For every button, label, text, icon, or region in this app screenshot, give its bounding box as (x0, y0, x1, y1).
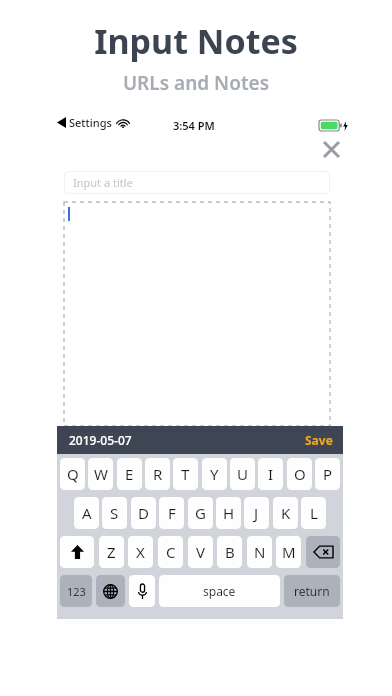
staticText: V (196, 542, 206, 562)
button[interactable]: Close (318, 136, 344, 162)
button[interactable]: K (273, 497, 298, 529)
button[interactable]: key (129, 575, 155, 607)
button[interactable]: R (145, 458, 170, 490)
staticText: F (168, 503, 176, 523)
button[interactable]: B (217, 536, 242, 568)
button[interactable]: N (247, 536, 272, 568)
button[interactable]: W (88, 458, 113, 490)
button[interactable]: G (188, 497, 213, 529)
staticText: Q (67, 464, 79, 484)
button[interactable]: return (284, 575, 340, 607)
staticText: 2019-05-07 (69, 432, 132, 448)
button[interactable]: L (301, 497, 326, 529)
staticText: T (181, 464, 190, 484)
staticText: Settings (69, 115, 112, 130)
staticText: L (310, 503, 318, 523)
staticText: A (82, 503, 92, 523)
button[interactable]: H (216, 497, 241, 529)
button[interactable]: Q (60, 458, 85, 490)
staticText: D (138, 503, 149, 523)
staticText: K (281, 503, 291, 523)
staticText: G (195, 503, 206, 523)
staticText: Input a title (73, 175, 133, 190)
button[interactable]: Y (202, 458, 227, 490)
staticText: space (203, 583, 236, 599)
staticText: C (166, 542, 176, 562)
button[interactable]: key (306, 536, 340, 568)
staticText: P (323, 464, 333, 484)
button[interactable]: M (276, 536, 301, 568)
staticText: I (268, 464, 274, 484)
button[interactable]: A (74, 497, 99, 529)
staticText: 3:54 PM (173, 118, 215, 133)
button[interactable]: 123 (60, 575, 92, 607)
staticText: E (125, 464, 134, 484)
button[interactable]: F (159, 497, 184, 529)
staticText: U (237, 464, 248, 484)
button[interactable]: Save (305, 432, 333, 448)
staticText: J (254, 503, 259, 523)
button[interactable]: space (159, 575, 280, 607)
button[interactable]: O (287, 458, 312, 490)
button[interactable]: C (158, 536, 183, 568)
staticText: Y (210, 464, 219, 484)
staticText: W (94, 464, 108, 484)
button[interactable]: T (173, 458, 198, 490)
staticText: Input Notes (0, 18, 392, 64)
staticText: S (110, 503, 119, 523)
button[interactable]: key (60, 536, 94, 568)
staticText: 123 (67, 584, 86, 599)
staticText: N (254, 542, 266, 562)
staticText: return (294, 583, 330, 599)
button[interactable]: S (102, 497, 127, 529)
button[interactable]: D (131, 497, 156, 529)
staticText: B (225, 542, 235, 562)
button[interactable]: E (117, 458, 142, 490)
button[interactable]: P (315, 458, 340, 490)
button[interactable]: X (128, 536, 153, 568)
button[interactable]: Z (99, 536, 124, 568)
staticText: M (282, 542, 296, 562)
button[interactable]: key (96, 575, 125, 607)
staticText: X (136, 542, 145, 562)
button[interactable]: U (230, 458, 255, 490)
button[interactable]: I (258, 458, 283, 490)
button[interactable]: Input a title (64, 171, 330, 194)
button[interactable]: J (244, 497, 269, 529)
staticText: URLs and Notes (0, 70, 392, 96)
staticText: Save (305, 432, 333, 448)
staticText: R (153, 464, 163, 484)
button[interactable]: V (188, 536, 213, 568)
staticText: Z (107, 542, 116, 562)
staticText: O (294, 464, 306, 484)
staticText: H (223, 503, 235, 523)
